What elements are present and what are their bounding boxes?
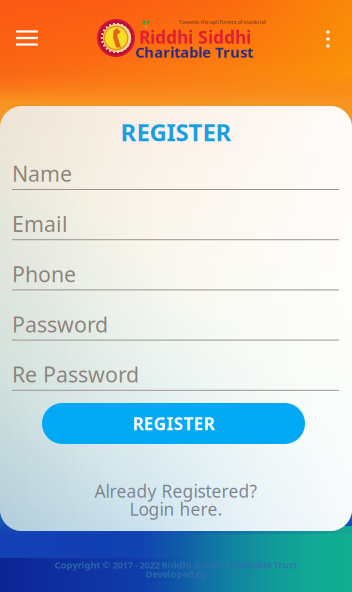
staticText: Password	[12, 310, 108, 338]
button[interactable]: Developed By	[145, 568, 206, 580]
staticText: Phone	[12, 260, 76, 288]
staticText: REGISTER	[120, 116, 231, 148]
staticText: Developed By	[145, 568, 206, 580]
staticText: Re Password	[12, 360, 139, 388]
staticText: Copyright © 2017 - 2022 Riddhi Siddhi Ch…	[54, 559, 297, 571]
staticText: Riddhi Siddhi	[139, 25, 251, 48]
staticText: REGISTER	[132, 412, 214, 435]
staticText: Towards the upliftment of mankind	[178, 18, 265, 26]
staticText: Email	[12, 209, 68, 238]
staticText: Login here.	[129, 497, 222, 520]
button[interactable]: Login here.	[129, 497, 222, 520]
staticText: Name	[12, 159, 72, 188]
button[interactable]: More options	[308, 15, 348, 63]
staticText: Already Registered?	[94, 479, 257, 502]
button[interactable]: Menu	[3, 14, 51, 62]
staticText: Charitable Trust	[135, 42, 253, 62]
button[interactable]: REGISTER	[42, 403, 305, 444]
